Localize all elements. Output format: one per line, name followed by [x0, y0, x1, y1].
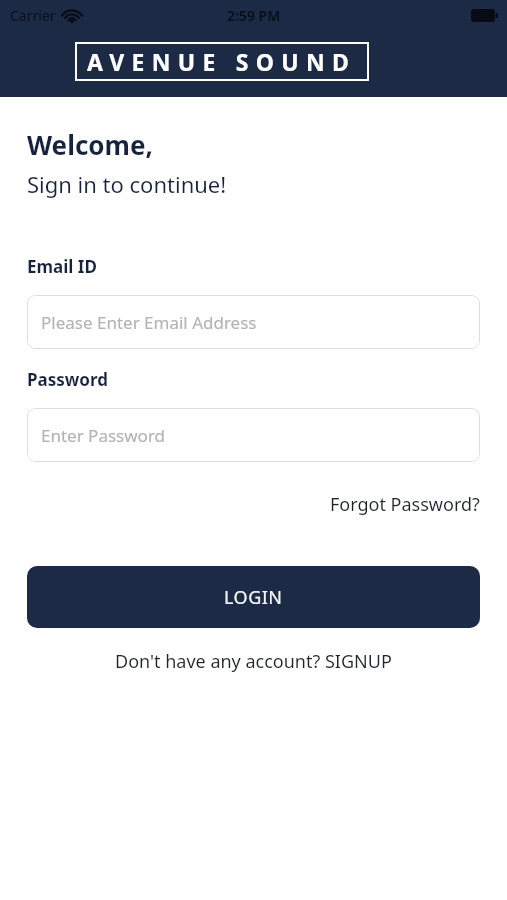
button[interactable]: Please Enter Email Address: [27, 295, 480, 349]
staticText: Email ID: [27, 255, 97, 278]
button[interactable]: Don't have any account? SIGNUP: [115, 649, 392, 674]
button[interactable]: Enter Password: [27, 408, 480, 462]
button[interactable]: LOGIN: [27, 566, 480, 628]
staticText: Please Enter Email Address: [41, 311, 257, 334]
staticText: Enter Password: [41, 424, 166, 447]
staticText: LOGIN: [224, 585, 283, 610]
staticText: Carrier: [10, 6, 56, 25]
staticText: Don't have any account? SIGNUP: [115, 649, 392, 674]
staticText: Sign in to continue!: [27, 169, 227, 199]
button[interactable]: Forgot Password?: [330, 492, 480, 517]
button[interactable]: AVENUE SOUND: [75, 42, 369, 81]
staticText: Forgot Password?: [330, 492, 480, 517]
staticText: Password: [27, 368, 108, 391]
staticText: AVENUE SOUND: [87, 46, 357, 77]
staticText: Welcome,: [27, 127, 153, 162]
staticText: 2:59 PM: [227, 6, 281, 25]
